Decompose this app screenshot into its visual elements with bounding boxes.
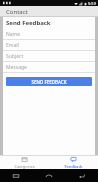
button[interactable]: Name	[3, 29, 95, 40]
staticText: 5:59	[88, 1, 96, 6]
staticText: Name	[6, 31, 21, 38]
button[interactable]: Message	[3, 62, 95, 73]
staticText: Send Feedback	[6, 19, 51, 27]
staticText: Contact	[6, 8, 28, 16]
staticText: Subject	[6, 53, 24, 60]
button[interactable]: Feedback	[49, 156, 98, 169]
button[interactable]: Categories	[0, 156, 49, 169]
button[interactable]: Back	[65, 169, 98, 182]
button[interactable]: Recent apps	[0, 169, 32, 182]
staticText: Email	[6, 42, 19, 49]
button[interactable]: Subject	[3, 51, 95, 62]
staticText: Message	[6, 64, 27, 71]
staticText: Categories	[14, 164, 35, 169]
staticText: Feedback	[64, 164, 83, 169]
button[interactable]: SEND FEEDBACK	[6, 77, 92, 86]
button[interactable]: Home	[32, 169, 65, 182]
button[interactable]: Email	[3, 40, 95, 51]
staticText: SEND FEEDBACK	[31, 79, 67, 85]
